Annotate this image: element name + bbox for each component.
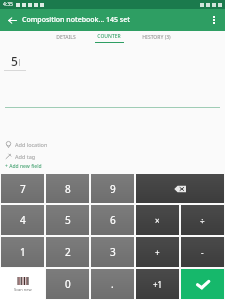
staticText: + [155,247,160,258]
staticText: 1 [20,245,26,259]
button[interactable]: + [136,237,179,267]
button[interactable]: 8 [46,174,89,203]
button[interactable]: 3 [91,237,134,267]
button[interactable]: 4 [1,205,44,235]
staticText: 6 [110,213,116,227]
staticText: DETAILS [56,34,76,41]
staticText: - [201,247,204,258]
button[interactable]: Add location [5,139,225,149]
button[interactable]: - [181,237,224,267]
button[interactable]: COUNTER [91,31,127,45]
button[interactable]: 5 [46,205,89,235]
button[interactable]: Scan new [0,268,45,300]
staticText: 4 [20,213,26,227]
button[interactable]: Confirm [181,269,224,299]
staticText: Composition notebook... 145 set [22,15,130,25]
staticText: 8 [65,182,71,196]
button[interactable]: Backspace [136,174,224,203]
staticText: 5 [11,53,18,69]
staticText: HISTORY (3) [142,34,171,41]
staticText: 0 [65,277,71,291]
button[interactable]: 7 [1,174,44,203]
staticText: 9 [110,182,116,196]
staticText: Add location [15,141,48,148]
staticText: 3 [110,245,116,259]
button[interactable]: DETAILS [49,31,83,45]
button[interactable]: HISTORY (3) [135,31,177,45]
button[interactable]: 2 [46,237,89,267]
staticText: COUNTER [97,33,121,40]
staticText: Scan new [14,287,32,292]
button[interactable]: 1 [1,237,44,267]
button[interactable]: +1 [136,269,179,299]
staticText: 4:35 [3,1,13,8]
staticText: . [111,277,114,291]
staticText: 7 [20,182,26,196]
button[interactable]: 0 [46,269,89,299]
staticText: 2 [65,245,71,259]
staticText: 5 [65,213,71,227]
button[interactable]: 6 [91,205,134,235]
staticText: × [155,215,160,226]
button[interactable]: . [91,269,134,299]
button[interactable]: ÷ [181,205,224,235]
button[interactable]: More options [207,13,221,27]
staticText: Add tag [15,153,36,160]
button[interactable]: Back [4,12,20,28]
button[interactable]: Add tag [5,151,225,161]
staticText: +1 [153,279,163,290]
staticText: + Add new field [5,163,42,170]
button[interactable]: + Add new field [5,162,225,171]
button[interactable]: 9 [91,174,134,203]
button[interactable]: × [136,205,179,235]
staticText: ÷ [200,215,205,226]
